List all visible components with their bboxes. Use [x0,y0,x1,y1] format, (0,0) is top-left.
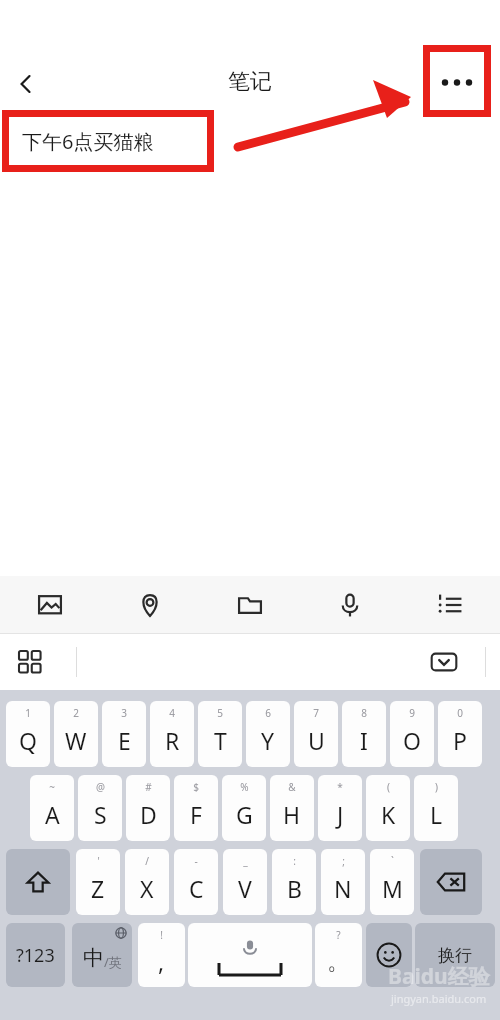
staticText: 6 [265,706,271,720]
staticText: ~ [49,780,55,794]
staticText: / [145,854,149,868]
button[interactable]: & [270,775,314,841]
staticText: M [382,873,403,904]
button[interactable]: ! [138,923,185,987]
staticText: $ [193,780,199,794]
button[interactable]: Space [188,923,312,987]
button[interactable]: # [126,775,170,841]
button[interactable]: 9 [390,701,434,767]
button[interactable]: More options [423,45,491,117]
button[interactable]: 4 [150,701,194,767]
button[interactable]: Symbols [6,923,65,987]
staticText: & [288,780,296,794]
button[interactable]: 2 [54,701,98,767]
button[interactable]: % [222,775,266,841]
button[interactable]: Location [100,576,200,633]
staticText: S [94,799,107,830]
staticText: Baidu经验 [388,962,490,991]
button[interactable]: * [318,775,362,841]
button[interactable]: @ [78,775,122,841]
staticText: H [283,799,301,830]
staticText: B [287,873,302,904]
staticText: Q [19,725,37,756]
button[interactable]: 1 [6,701,50,767]
staticText: O [403,725,421,756]
staticText: N [334,873,352,904]
staticText: Z [91,873,105,904]
button[interactable]: Folder [200,576,300,633]
button[interactable]: 0 [438,701,482,767]
button[interactable]: ' [76,849,120,915]
staticText: J [337,799,344,830]
staticText: U [308,725,325,756]
staticText: I [360,725,368,756]
button[interactable]: Insert image [0,576,100,633]
staticText: F [190,799,202,830]
button[interactable]: ( [366,775,410,841]
staticText: W [65,725,87,756]
button[interactable]: ? [315,923,362,987]
staticText: T [214,725,227,756]
staticText: ? [336,928,341,942]
staticText: 1 [25,706,31,720]
staticText: /英 [104,953,122,971]
staticText: 7 [313,706,319,720]
button[interactable]: 5 [198,701,242,767]
staticText: ?123 [16,943,55,968]
staticText: , [158,946,165,977]
staticText: Y [261,725,275,756]
staticText: 0 [457,706,463,720]
button[interactable]: ; [321,849,365,915]
button[interactable]: Newline [415,923,495,987]
button[interactable]: Hide keyboard [424,642,464,682]
button[interactable]: 6 [246,701,290,767]
button[interactable]: Tools [8,640,52,684]
button[interactable]: Switch language [72,923,132,987]
staticText: # [145,780,152,794]
staticText: G [236,799,253,830]
button[interactable]: Backspace [420,849,482,915]
button[interactable]: Shift [6,849,70,915]
staticText: ` [391,854,394,868]
staticText: 中 [83,945,104,971]
staticText: 换行 [438,945,472,966]
staticText: L [430,799,443,830]
staticText: X [140,873,154,904]
staticText: 5 [217,706,223,720]
button[interactable]: _ [223,849,267,915]
button[interactable]: : [272,849,316,915]
button[interactable]: Checklist [400,576,500,633]
button[interactable]: 8 [342,701,386,767]
button[interactable]: Back [4,62,48,106]
staticText: 下午6点买猫粮 [22,128,154,155]
staticText: ' [97,854,100,868]
staticText: K [381,799,396,830]
staticText: ; [342,854,345,868]
button[interactable]: Voice input [300,576,400,633]
staticText: V [238,873,252,904]
staticText: 8 [361,706,367,720]
button[interactable]: ` [370,849,414,915]
staticText: ) [435,780,438,794]
staticText: 9 [409,706,415,720]
staticText: ! [160,928,163,942]
staticText: C [189,873,204,904]
staticText: * [337,780,343,794]
staticText: 。 [327,947,350,976]
staticText: _ [243,854,248,868]
button[interactable]: ) [414,775,458,841]
button[interactable]: / [125,849,169,915]
staticText: ( [387,780,390,794]
staticText: A [45,799,60,830]
staticText: - [194,854,198,868]
staticText: 笔记 [228,68,272,96]
staticText: 4 [169,706,175,720]
button[interactable]: $ [174,775,218,841]
button[interactable]: 3 [102,701,146,767]
button[interactable]: - [174,849,218,915]
staticText: @ [96,780,105,794]
staticText: 3 [121,706,127,720]
button[interactable]: 7 [294,701,338,767]
button[interactable]: ~ [30,775,74,841]
button[interactable]: Emoji [366,923,412,987]
